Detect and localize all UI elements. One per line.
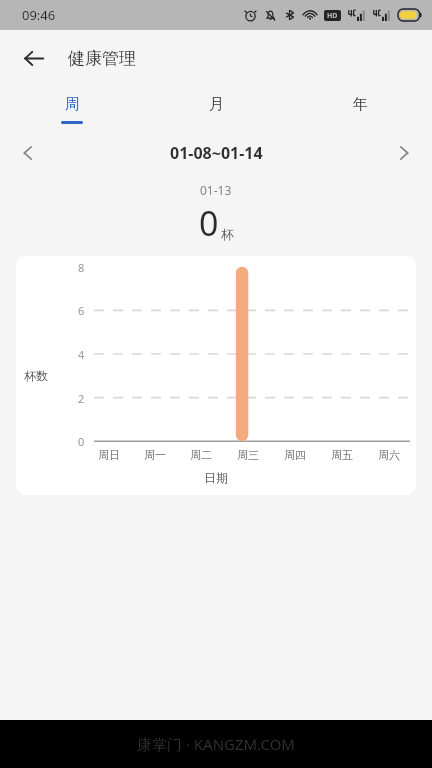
staticText: 年 xyxy=(353,95,368,114)
button[interactable]: Previous week xyxy=(10,135,46,171)
button[interactable]: 月 xyxy=(144,86,288,132)
staticText: 周六 xyxy=(378,448,400,462)
button[interactable]: 8 xyxy=(16,256,416,495)
staticText: 2 xyxy=(78,391,85,406)
staticText: 月 xyxy=(209,95,224,114)
button[interactable]: 周 xyxy=(0,86,144,132)
staticText: 康掌门 · KANGZM.COM xyxy=(137,734,295,754)
staticText: HD xyxy=(327,11,338,21)
staticText: 01-13 xyxy=(200,182,232,198)
staticText: 健康管理 xyxy=(68,48,136,69)
staticText: 日期 xyxy=(204,470,228,485)
staticText: 周二 xyxy=(190,448,212,462)
staticText: 周日 xyxy=(98,448,120,462)
staticText: 杯 xyxy=(221,226,234,242)
staticText: 杯数 xyxy=(24,368,48,383)
staticText: 周五 xyxy=(331,448,353,462)
staticText: 09:46 xyxy=(22,6,56,24)
staticText: 4 xyxy=(78,347,85,362)
staticText: 0 xyxy=(78,434,85,449)
button[interactable]: Next week xyxy=(386,135,422,171)
staticText: 周三 xyxy=(237,448,259,462)
staticText: 周一 xyxy=(144,448,166,462)
button[interactable]: Back xyxy=(14,38,54,78)
staticText: 周 xyxy=(65,95,80,114)
staticText: 8 xyxy=(78,260,85,275)
staticText: 0 xyxy=(199,200,219,246)
button[interactable]: 年 xyxy=(288,86,432,132)
staticText: 周四 xyxy=(284,448,306,462)
staticText: 01-08~01-14 xyxy=(170,142,263,164)
staticText: 6 xyxy=(78,303,85,318)
